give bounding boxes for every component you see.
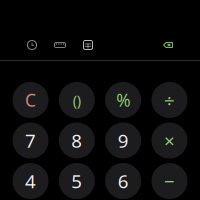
button[interactable]: 7 <box>12 122 48 158</box>
button[interactable]: Unit converter <box>46 35 74 55</box>
staticText: 6 <box>118 169 129 193</box>
button[interactable]: () <box>59 82 95 118</box>
button[interactable]: Delete <box>154 35 182 55</box>
staticText: C <box>25 88 36 111</box>
button[interactable]: 6 <box>105 163 141 199</box>
staticText: 8 <box>71 128 82 153</box>
button[interactable]: Recents <box>18 35 46 55</box>
button[interactable]: − <box>151 163 187 199</box>
staticText: % <box>116 88 130 111</box>
staticText: × <box>164 128 175 153</box>
staticText: − <box>164 169 175 193</box>
staticText: 4 <box>25 169 36 193</box>
button[interactable]: % <box>105 82 141 118</box>
button[interactable]: ÷ <box>151 82 187 118</box>
staticText: 7 <box>25 128 36 153</box>
staticText: () <box>73 90 81 110</box>
staticText: 9 <box>118 128 129 153</box>
button[interactable]: × <box>151 122 187 158</box>
button[interactable]: 4 <box>12 163 48 199</box>
button[interactable]: C <box>12 82 48 118</box>
staticText: ÷ <box>164 88 175 112</box>
button[interactable]: 5 <box>59 163 95 199</box>
button[interactable]: Calculator <box>74 35 102 55</box>
staticText: 5 <box>71 169 82 193</box>
button[interactable]: 8 <box>59 122 95 158</box>
button[interactable]: 9 <box>105 122 141 158</box>
